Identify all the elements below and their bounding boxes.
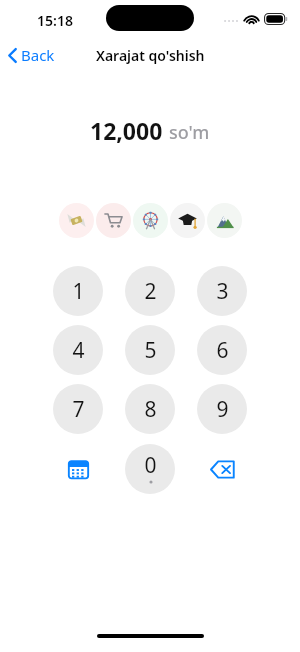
button[interactable]: 8 [125,384,175,434]
button[interactable]: Education [170,203,205,238]
button[interactable]: 7 [53,384,103,434]
staticText: so'm [169,120,210,145]
button[interactable]: 5 [125,325,175,375]
staticText: 15:18 [37,11,73,30]
button[interactable]: 9 [197,384,247,434]
button[interactable]: Backspace [200,447,244,491]
button[interactable]: Entertainment [133,203,168,238]
staticText: 7 [72,395,85,424]
staticText: 12,000 [90,115,163,146]
staticText: 0 [144,451,157,480]
staticText: Xarajat qo'shish [96,46,205,65]
staticText: 8 [144,395,157,424]
button[interactable]: Shopping [96,203,131,238]
button[interactable]: 1 [53,266,103,316]
button[interactable]: Travel [207,203,242,238]
staticText: 9 [216,395,229,424]
button[interactable]: 0 [125,444,175,494]
button[interactable]: 2 [125,266,175,316]
staticText: 2 [144,277,157,306]
staticText: 6 [216,336,229,365]
button[interactable]: Money [59,203,94,238]
staticText: 5 [144,336,157,365]
button[interactable]: 4 [53,325,103,375]
button[interactable]: 3 [197,266,247,316]
staticText: 3 [216,277,229,306]
button[interactable]: Select date [56,447,100,491]
button[interactable]: Back [0,40,63,70]
staticText: 4 [72,336,85,365]
staticText: 1 [72,277,85,306]
staticText: Back [21,45,55,65]
button[interactable]: 6 [197,325,247,375]
